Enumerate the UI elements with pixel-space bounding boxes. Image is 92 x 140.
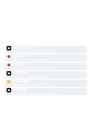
staticText: KALENDÁŘ — [13, 71, 27, 75]
staticText: NASTAVENÍ — [13, 88, 27, 92]
staticText: ZPRÁVY — [13, 54, 25, 58]
staticText: POZNÁMKY — [13, 80, 29, 83]
button[interactable]: MOBILNÍ BANKA — [5, 46, 87, 53]
button[interactable]: POZNÁMKY — [5, 79, 87, 87]
button[interactable]: ZPRÁVY — [5, 54, 87, 62]
staticText: ZPRÁVY — [13, 63, 25, 66]
button[interactable]: ZPRÁVY — [5, 63, 87, 70]
staticText: MOBILNÍ BANKA — [13, 46, 35, 50]
staticText: Schůzka v 10:00 v kanceláři — [13, 75, 48, 79]
button[interactable]: NASTAVENÍ — [5, 88, 87, 95]
button[interactable]: KALENDÁŘ — [5, 71, 87, 78]
